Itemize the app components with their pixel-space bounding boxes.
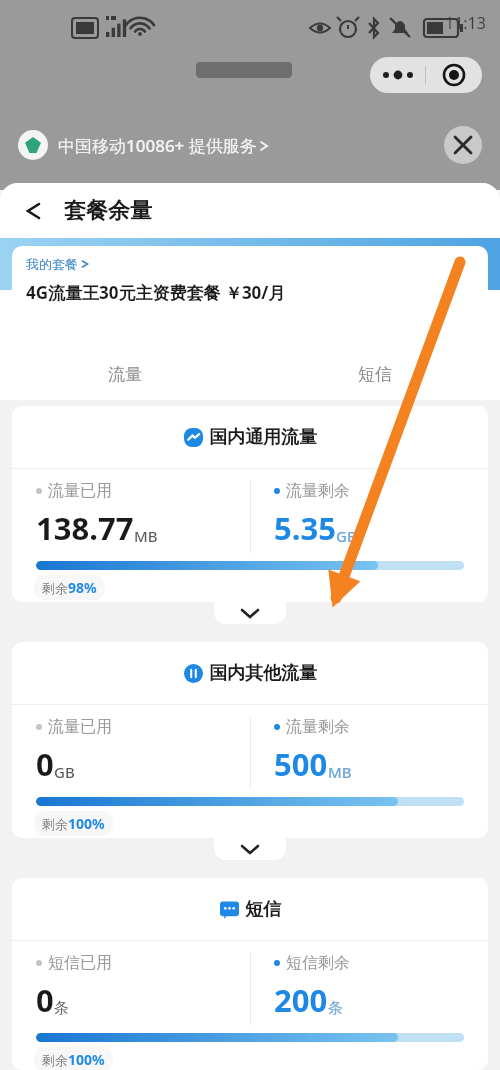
staticText: 短信剩余 <box>286 953 350 973</box>
staticText: 条 <box>328 999 343 1018</box>
button[interactable]: 展开 <box>214 602 286 624</box>
staticText: 国内通用流量 <box>209 426 317 449</box>
staticText: 0 <box>36 743 54 785</box>
staticText: 200 <box>274 979 328 1021</box>
staticText: MB <box>328 762 352 782</box>
staticText: 我的套餐 <box>26 256 78 272</box>
staticText: 中国移动10086+ 提供服务 <box>58 134 257 157</box>
button[interactable]: 国内通用流量 <box>12 406 488 602</box>
button[interactable]: 我的套餐 <box>12 246 488 340</box>
staticText: 短信 <box>358 364 392 385</box>
staticText: 流量已用 <box>48 481 112 501</box>
button[interactable]: 更多 <box>370 57 482 93</box>
staticText: 0 <box>36 979 54 1021</box>
staticText: 5.35 <box>274 507 336 549</box>
staticText: 500 <box>274 743 328 785</box>
button[interactable]: 返回 <box>16 194 50 228</box>
staticText: 98% <box>68 578 97 597</box>
staticText: 流量 <box>108 364 142 385</box>
button[interactable]: 展开 <box>214 838 286 860</box>
button[interactable]: 短信 <box>12 878 488 1070</box>
staticText: 短信 <box>245 898 281 921</box>
staticText: MB <box>134 526 158 546</box>
staticText: 流量已用 <box>48 717 112 737</box>
staticText: 套餐余量 <box>64 197 152 225</box>
staticText: 流量剩余 <box>286 717 350 737</box>
staticText: 流量剩余 <box>286 481 350 501</box>
staticText: 国内其他流量 <box>209 662 317 685</box>
button[interactable]: 中国移动10086+ 提供服务 <box>58 134 269 157</box>
staticText: 138.77 <box>36 507 134 549</box>
button[interactable]: 关闭 <box>444 126 482 164</box>
staticText: 剩余 <box>42 1052 68 1068</box>
staticText: 4G流量王30元主资费套餐 ￥30/月 <box>26 281 286 304</box>
staticText: 剩余 <box>42 816 68 832</box>
button[interactable]: 短信 <box>250 348 500 400</box>
staticText: GB <box>336 526 357 546</box>
staticText: 条 <box>54 999 69 1018</box>
button[interactable]: 流量 <box>0 348 250 400</box>
staticText: 短信已用 <box>48 953 112 973</box>
staticText: 100% <box>68 814 105 833</box>
staticText: 11:13 <box>445 12 486 34</box>
staticText: GB <box>54 762 75 782</box>
button[interactable]: 国内其他流量 <box>12 642 488 838</box>
staticText: 剩余 <box>42 580 68 596</box>
staticText: 100% <box>68 1050 105 1069</box>
